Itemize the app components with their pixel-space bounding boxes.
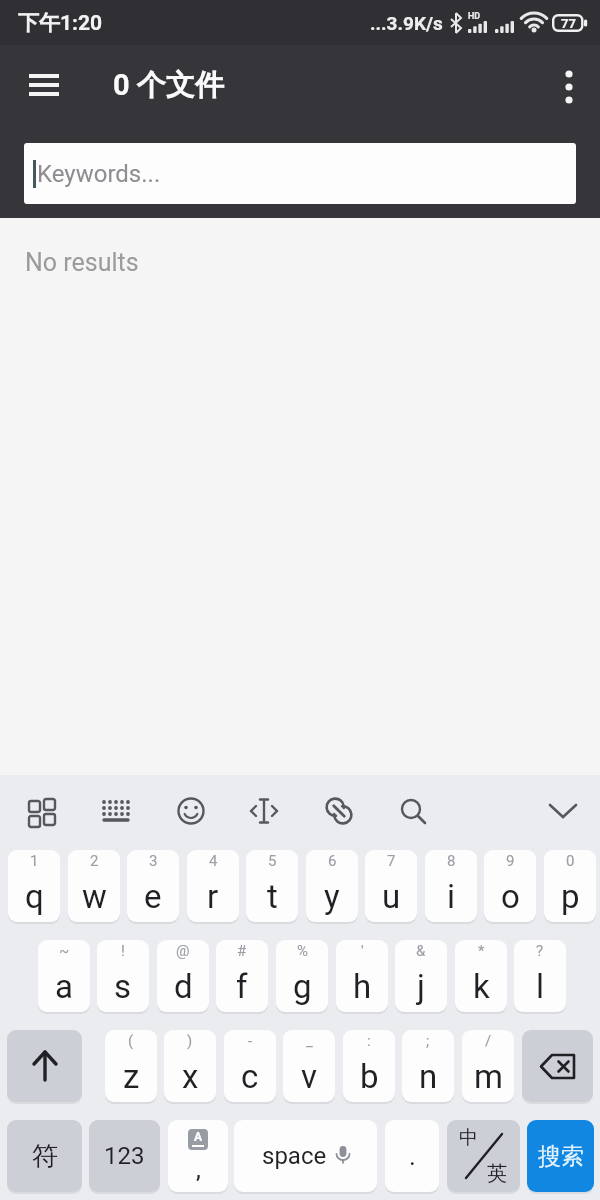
button[interactable] (92, 787, 140, 835)
staticText: c (241, 1057, 259, 1096)
staticText: ...3.9K/s (370, 12, 443, 34)
staticText: @ (176, 942, 190, 960)
staticText: r (207, 877, 219, 916)
button[interactable]: 0 (544, 850, 596, 922)
button[interactable]: ) (164, 1030, 216, 1102)
button[interactable]: # (216, 940, 268, 1012)
button[interactable]: 符 (7, 1120, 82, 1192)
staticText: HD (468, 11, 481, 22)
button[interactable] (315, 787, 363, 835)
staticText: 4 (209, 852, 218, 870)
staticText: z (123, 1057, 140, 1096)
button[interactable]: - (224, 1030, 276, 1102)
button[interactable] (522, 1030, 593, 1102)
staticText: 下午1:20 (18, 10, 103, 36)
staticText: v (301, 1057, 317, 1096)
staticText: 符 (32, 1140, 58, 1173)
button[interactable] (389, 787, 437, 835)
button[interactable]: 9 (484, 850, 536, 922)
staticText: ; (426, 1032, 430, 1050)
button[interactable]: Keywords... (24, 143, 576, 204)
button[interactable] (167, 787, 215, 835)
button[interactable] (552, 68, 586, 102)
staticText: a (55, 967, 73, 1006)
staticText: 6 (328, 852, 337, 870)
staticText: ? (536, 942, 544, 960)
button[interactable]: _ (283, 1030, 335, 1102)
staticText: # (237, 942, 247, 960)
staticText: 8 (447, 852, 456, 870)
staticText: 9 (506, 852, 515, 870)
staticText: b (360, 1057, 379, 1096)
button[interactable] (240, 787, 288, 835)
staticText: 0 (566, 852, 575, 870)
button[interactable]: 2 (68, 850, 120, 922)
button[interactable]: 6 (306, 850, 358, 922)
staticText: g (293, 967, 312, 1006)
staticText: y (324, 877, 340, 916)
staticText: k (473, 967, 490, 1006)
staticText: 77 (561, 16, 576, 31)
staticText: 0 个文件 (113, 67, 224, 104)
button[interactable]: / (462, 1030, 514, 1102)
button[interactable]: % (276, 940, 328, 1012)
staticText: Keywords... (37, 160, 161, 188)
button[interactable]: 4 (187, 850, 239, 922)
button[interactable]: 7 (365, 850, 417, 922)
button[interactable]: 3 (127, 850, 179, 922)
button[interactable]: ( (105, 1030, 157, 1102)
staticText: : (367, 1032, 371, 1050)
staticText: 搜索 (538, 1142, 584, 1171)
button[interactable]: 8 (425, 850, 477, 922)
staticText: ! (121, 942, 125, 960)
button[interactable]: ! (97, 940, 149, 1012)
staticText: w (82, 877, 107, 916)
button[interactable]: : (343, 1030, 395, 1102)
button[interactable]: ? (514, 940, 566, 1012)
staticText: _ (306, 1032, 313, 1050)
button[interactable]: 中 (447, 1120, 520, 1192)
staticText: h (353, 967, 372, 1006)
staticText: 中 (459, 1126, 478, 1150)
staticText: p (561, 877, 580, 916)
button[interactable]: * (455, 940, 507, 1012)
staticText: f (236, 967, 248, 1006)
button[interactable]: ' (336, 940, 388, 1012)
staticText: n (419, 1057, 438, 1096)
staticText: ' (361, 942, 364, 960)
button[interactable]: ~ (38, 940, 90, 1012)
button[interactable]: 5 (246, 850, 298, 922)
staticText: , (196, 1158, 201, 1184)
button[interactable]: @ (157, 940, 209, 1012)
staticText: q (25, 877, 44, 916)
button[interactable] (24, 65, 64, 105)
staticText: o (501, 877, 520, 916)
staticText: 7 (387, 852, 396, 870)
staticText: space (262, 1142, 327, 1170)
staticText: & (416, 942, 426, 960)
staticText: * (478, 942, 485, 960)
button[interactable]: ; (402, 1030, 454, 1102)
button[interactable]: 搜索 (527, 1120, 594, 1192)
staticText: s (114, 967, 132, 1006)
button[interactable]: space (234, 1120, 377, 1192)
button[interactable] (7, 1030, 82, 1102)
button[interactable] (539, 787, 587, 835)
staticText: No results (25, 248, 139, 277)
staticText: i (447, 877, 456, 916)
staticText: A (194, 1130, 203, 1144)
button[interactable]: . (385, 1120, 439, 1192)
staticText: - (248, 1032, 253, 1050)
staticText: 5 (268, 852, 277, 870)
staticText: ( (128, 1032, 134, 1050)
button[interactable]: 1 (8, 850, 60, 922)
staticText: 123 (104, 1142, 145, 1170)
button[interactable] (17, 787, 65, 835)
staticText: x (182, 1057, 199, 1096)
staticText: m (474, 1057, 503, 1096)
button[interactable]: 123 (89, 1120, 160, 1192)
button[interactable]: & (395, 940, 447, 1012)
button[interactable]: A (168, 1120, 228, 1192)
staticText: 3 (149, 852, 158, 870)
staticText: 2 (90, 852, 99, 870)
